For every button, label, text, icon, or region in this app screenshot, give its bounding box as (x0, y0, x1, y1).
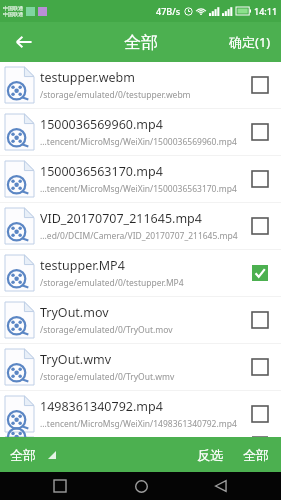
staticText: TryOut.wmv (40, 351, 112, 368)
staticText: ...tencent/MicroMsg/WeiXin/1500036569960… (40, 136, 237, 148)
button[interactable]: 确定(1) (219, 22, 281, 62)
staticText: 1500036569960.mp4 (40, 116, 163, 133)
button[interactable]: TryOut.wmv (0, 344, 281, 390)
button[interactable]: Not selected (247, 213, 273, 239)
button[interactable]: testupper.webm (0, 62, 281, 108)
button[interactable]: 1498361340792.mp4 (0, 391, 281, 437)
staticText: 1500036563170.mp4 (40, 163, 163, 180)
button[interactable]: 1500036569960.mp4 (0, 109, 281, 155)
staticText: 1498361340792.mp4 (40, 398, 163, 415)
staticText: 全部 (124, 32, 158, 53)
staticText: ...tencent/MicroMsg/WeiXin/1500036563170… (40, 183, 237, 195)
staticText: /storage/emulated/0/testupper.webm (40, 89, 191, 101)
button[interactable]: 反选 (187, 437, 233, 472)
button[interactable]: 全部 (233, 437, 281, 472)
staticText: 确定(1) (229, 33, 271, 51)
button[interactable]: Selected (247, 260, 273, 286)
staticText: 中国联通 (3, 11, 23, 17)
button[interactable]: Not selected (247, 354, 273, 380)
staticText: /storage/emulated/0/TryOut.mov (40, 324, 173, 336)
button[interactable]: Home (121, 472, 161, 500)
staticText: 47B/s (156, 5, 181, 17)
staticText: TryOut.mov (40, 304, 109, 321)
staticText: ...tencent/MicroMsg/WeiXin/1498361340792… (40, 418, 237, 430)
button[interactable]: Not selected (247, 401, 273, 427)
button[interactable]: Recents (40, 472, 80, 500)
staticText: 14:11 (254, 5, 278, 17)
staticText: testupper.MP4 (40, 257, 125, 274)
button[interactable]: Not selected (247, 72, 273, 98)
staticText: 中国联通 (3, 5, 23, 11)
button[interactable]: Not selected (247, 166, 273, 192)
button[interactable]: Not selected (247, 307, 273, 333)
staticText: VID_20170707_211645.mp4 (40, 210, 202, 227)
staticText: ...ed/0/DCIM/Camera/VID_20170707_211645.… (40, 230, 238, 242)
staticText: 全部 (10, 447, 36, 463)
button[interactable]: 1500036563170.mp4 (0, 156, 281, 202)
button[interactable]: 全部 (0, 437, 62, 472)
staticText: /storage/emulated/0/TryOut.wmv (40, 371, 175, 383)
button[interactable]: TryOut.mov (0, 297, 281, 343)
button[interactable]: Not selected (247, 119, 273, 145)
staticText: testupper.webm (40, 69, 135, 86)
staticText: 反选 (197, 447, 223, 463)
staticText: /storage/emulated/0/testupper.MP4 (40, 277, 184, 289)
button[interactable]: VID_20170707_211645.mp4 (0, 203, 281, 249)
button[interactable]: Back (0, 22, 48, 62)
button[interactable]: testupper.MP4 (0, 250, 281, 296)
staticText: 全部 (243, 447, 269, 463)
button[interactable]: Back (201, 472, 241, 500)
